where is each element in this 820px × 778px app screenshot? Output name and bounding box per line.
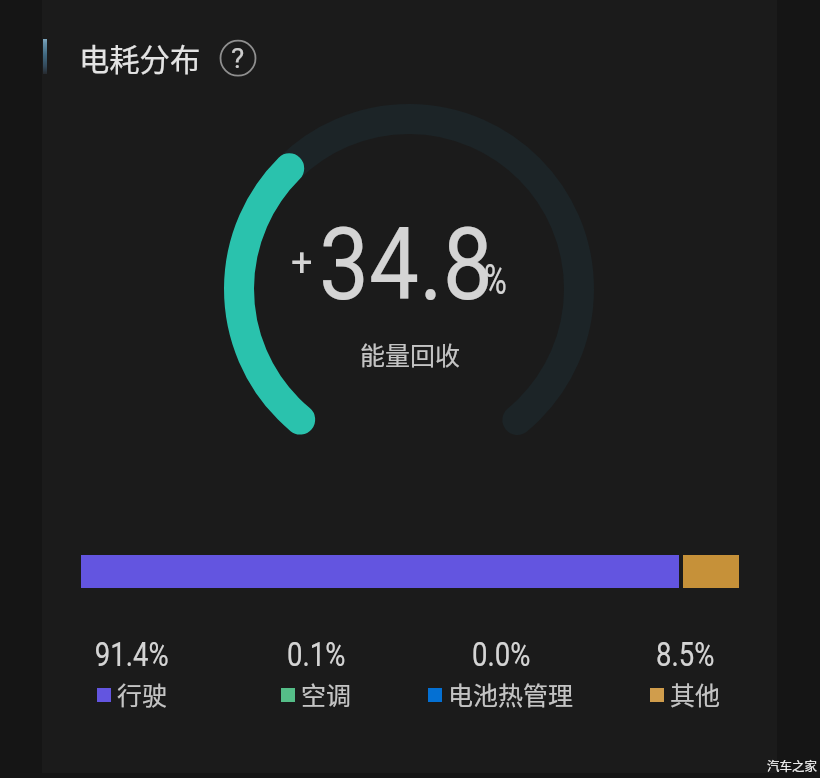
- staticText: 空调: [301, 676, 352, 712]
- staticText: 34.8: [319, 206, 493, 323]
- button[interactable]: 0.0%: [409, 632, 593, 712]
- staticText: 行驶: [117, 676, 168, 712]
- staticText: 电耗分布: [79, 36, 201, 80]
- staticText: 8.5%: [656, 634, 715, 674]
- staticText: 电池热管理: [448, 676, 574, 712]
- button[interactable]: 8.5%: [593, 632, 777, 712]
- staticText: ?: [231, 42, 245, 75]
- staticText: 其他: [670, 676, 721, 712]
- staticText: 汽车之家: [767, 756, 818, 774]
- button[interactable]: Help: [208, 28, 268, 88]
- staticText: 能量回收: [360, 336, 461, 372]
- staticText: %: [484, 255, 507, 304]
- button[interactable]: 电耗分布: [78, 28, 206, 86]
- staticText: +: [291, 241, 313, 286]
- staticText: 0.0%: [472, 634, 531, 674]
- staticText: 0.1%: [287, 634, 346, 674]
- button[interactable]: 0.1%: [224, 632, 408, 712]
- staticText: 91.4%: [95, 634, 169, 674]
- button[interactable]: 91.4%: [40, 632, 224, 712]
